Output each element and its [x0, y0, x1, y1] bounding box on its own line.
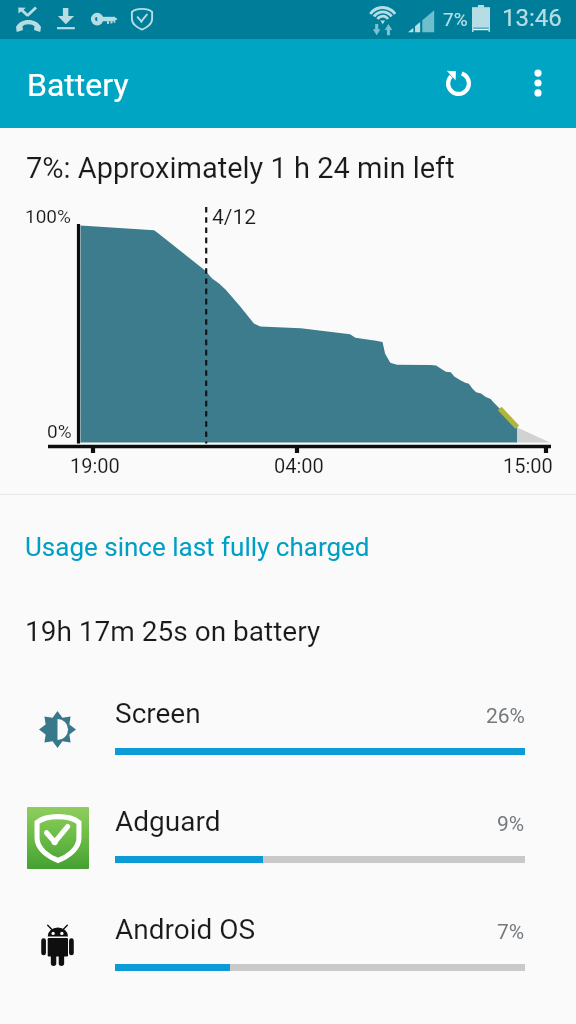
staticText: 7% — [443, 8, 468, 30]
staticText: 15:00 — [503, 454, 553, 477]
button[interactable]: Adguard — [0, 781, 576, 889]
button[interactable]: Android OS — [0, 889, 576, 997]
staticText: 26% — [486, 704, 525, 729]
staticText: Adguard — [115, 805, 221, 838]
staticText: Battery — [27, 66, 129, 104]
button[interactable]: Refresh — [428, 53, 488, 113]
staticText: 9% — [497, 812, 525, 837]
staticText: 7%: Approximately 1 h 24 min left — [26, 151, 455, 185]
staticText: 4/12 — [212, 205, 257, 230]
button[interactable]: Screen — [0, 673, 576, 781]
staticText: 0% — [47, 420, 72, 442]
staticText: 100% — [25, 205, 71, 227]
staticText: 13:46 — [502, 4, 562, 32]
button[interactable]: More options — [508, 53, 568, 113]
staticText: 04:00 — [274, 454, 324, 477]
staticText: Screen — [115, 697, 201, 730]
staticText: 19h 17m 25s on battery — [25, 615, 321, 648]
staticText: 7% — [497, 920, 525, 945]
staticText: Android OS — [115, 913, 256, 946]
button[interactable]: Usage since last fully charged — [25, 532, 370, 562]
staticText: 19:00 — [70, 454, 120, 477]
